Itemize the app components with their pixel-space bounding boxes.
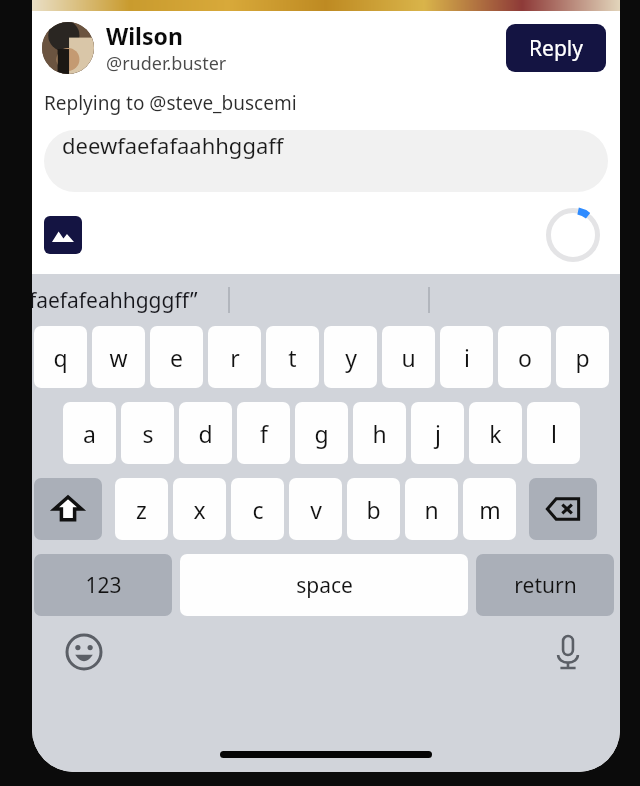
button[interactable]: deewfaefafaahhggaff <box>44 130 608 192</box>
button[interactable]: Delete <box>529 478 597 540</box>
button[interactable]: x <box>173 478 226 540</box>
staticText: z <box>136 494 147 525</box>
button[interactable]: r <box>208 326 261 388</box>
staticText: o <box>518 342 532 373</box>
button[interactable]: f <box>237 402 290 464</box>
staticText: g <box>314 418 329 449</box>
button[interactable]: Shift <box>34 478 102 540</box>
button[interactable]: Dictate <box>546 630 590 674</box>
staticText: e <box>170 342 183 373</box>
staticText: r <box>230 342 240 373</box>
staticText: q <box>53 342 68 373</box>
staticText: y <box>345 342 357 373</box>
staticText: x <box>193 494 206 525</box>
other: Uploading progress <box>546 208 600 262</box>
button[interactable]: k <box>469 402 522 464</box>
staticText: v <box>310 494 322 525</box>
staticText: b <box>366 494 381 525</box>
button[interactable]: o <box>498 326 551 388</box>
button[interactable]: b <box>347 478 400 540</box>
button[interactable]: v <box>289 478 342 540</box>
staticText: space <box>296 571 353 600</box>
button[interactable]: p <box>556 326 609 388</box>
staticText: p <box>575 342 590 373</box>
button[interactable]: Reply <box>506 24 606 72</box>
button[interactable]: space <box>180 554 468 616</box>
button[interactable]: Add image <box>44 216 82 254</box>
button[interactable]: q <box>34 326 87 388</box>
staticText: f <box>260 418 268 449</box>
button[interactable]: d <box>179 402 232 464</box>
staticText: j <box>435 418 441 449</box>
button[interactable]: h <box>353 402 406 464</box>
staticText: u <box>401 342 416 373</box>
button[interactable]: g <box>295 402 348 464</box>
staticText: Reply <box>529 34 583 63</box>
button[interactable]: return <box>476 554 614 616</box>
staticText: deewfaefafaahhggaff <box>62 130 284 160</box>
staticText: n <box>424 494 439 525</box>
button[interactable]: i <box>440 326 493 388</box>
staticText: @ruder.buster <box>106 51 227 76</box>
staticText: l <box>551 418 557 449</box>
staticText: s <box>142 418 154 449</box>
staticText: w <box>109 342 128 373</box>
staticText: d <box>198 418 213 449</box>
button[interactable]: n <box>405 478 458 540</box>
staticText: Replying to @steve_buscemi <box>44 90 297 116</box>
staticText: t <box>288 342 297 373</box>
staticText: faefafeahhgggff” <box>32 286 198 315</box>
button[interactable]: e <box>150 326 203 388</box>
staticText: k <box>489 418 502 449</box>
staticText: c <box>252 494 264 525</box>
button[interactable]: Emoji <box>62 630 106 674</box>
button[interactable]: Profile photo <box>42 22 94 74</box>
button[interactable]: a <box>63 402 116 464</box>
staticText: 123 <box>85 571 122 600</box>
staticText: a <box>83 418 96 449</box>
button[interactable]: u <box>382 326 435 388</box>
staticText: return <box>514 571 577 600</box>
button[interactable]: l <box>527 402 580 464</box>
button[interactable]: s <box>121 402 174 464</box>
button[interactable]: 123 <box>34 554 172 616</box>
staticText: Wilson <box>106 20 183 51</box>
staticText: i <box>464 342 470 373</box>
staticText: m <box>479 494 501 525</box>
button[interactable]: t <box>266 326 319 388</box>
button[interactable]: m <box>463 478 516 540</box>
button[interactable]: w <box>92 326 145 388</box>
staticText: h <box>372 418 387 449</box>
button[interactable]: c <box>231 478 284 540</box>
button[interactable]: j <box>411 402 464 464</box>
button[interactable]: y <box>324 326 377 388</box>
button[interactable]: z <box>115 478 168 540</box>
